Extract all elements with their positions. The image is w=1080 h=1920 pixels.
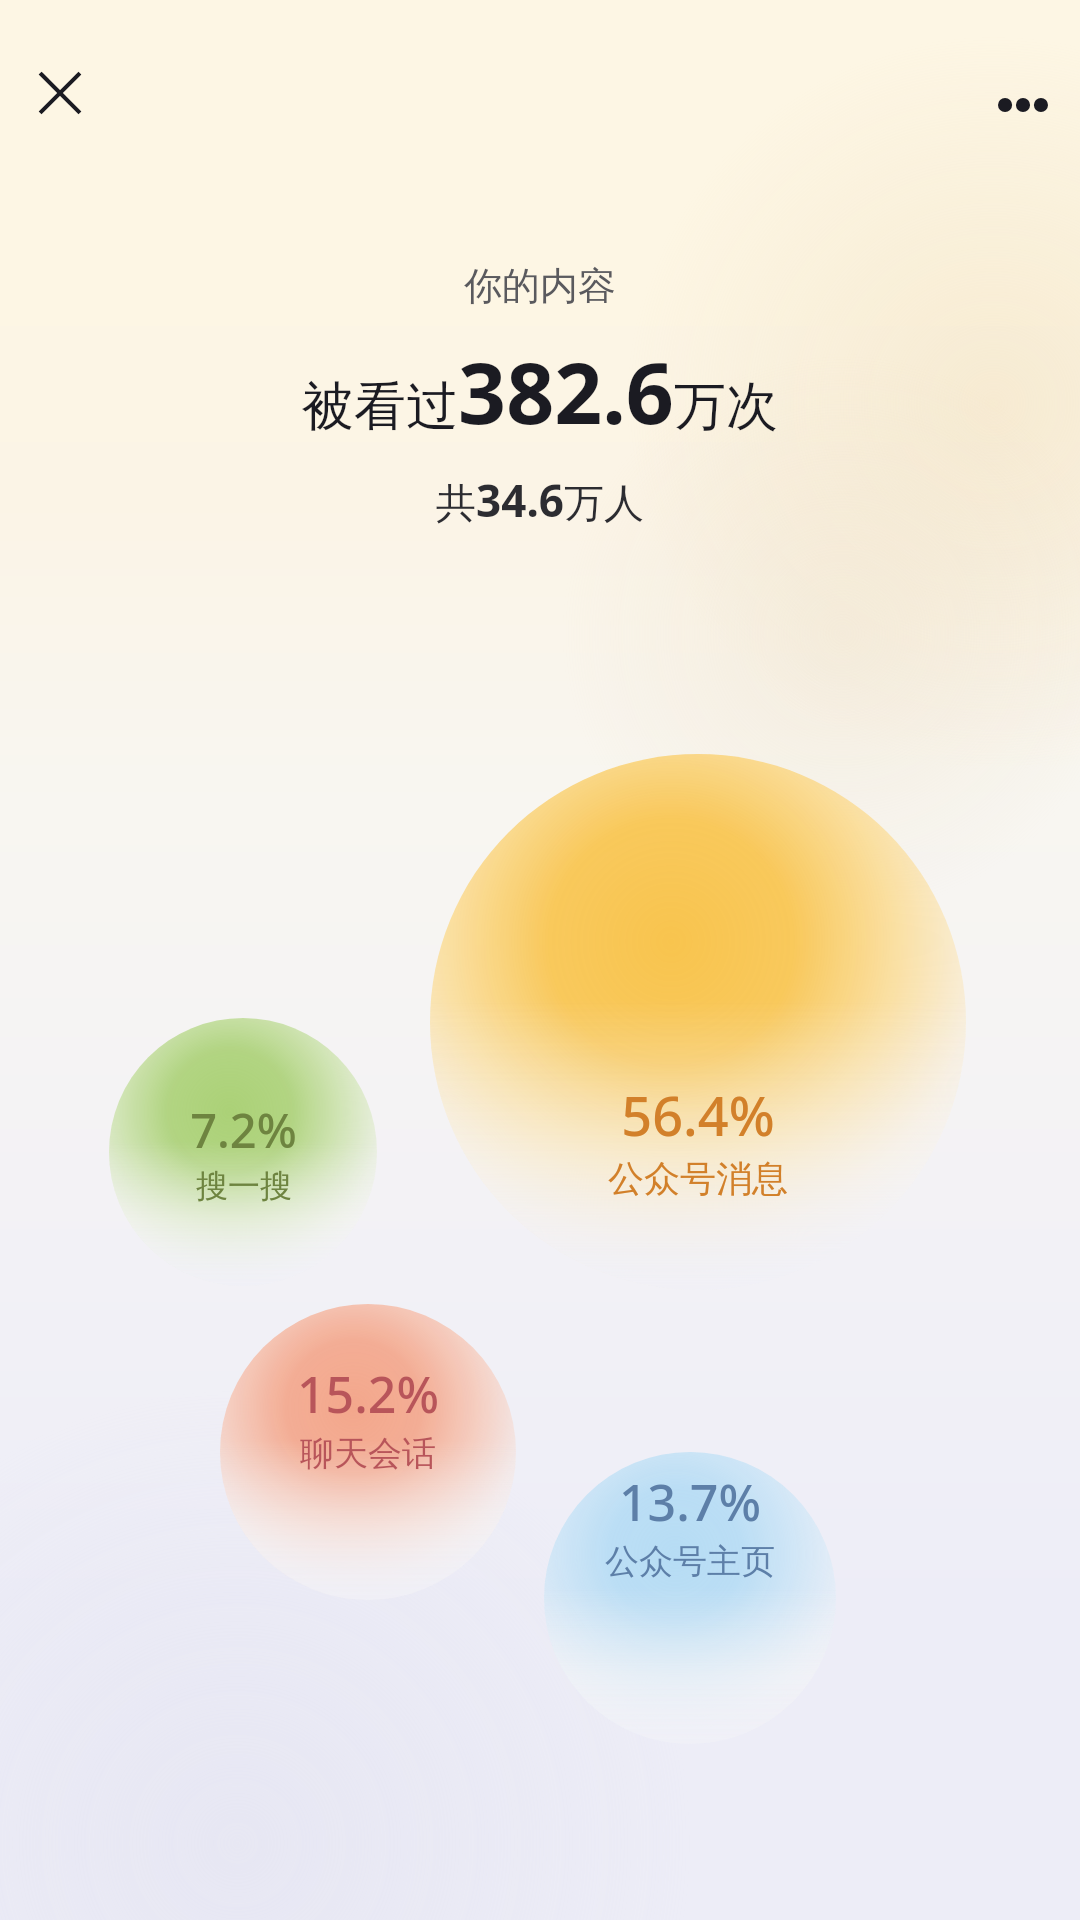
staticText: 搜一搜 xyxy=(196,1166,292,1206)
staticText: 15.2% xyxy=(297,1360,439,1428)
button[interactable]: More options xyxy=(985,67,1060,142)
staticText: 公众号主页 xyxy=(605,1540,775,1583)
button[interactable]: Close xyxy=(22,55,97,130)
staticText: 你的内容 xyxy=(464,262,616,310)
staticText: 共34.6万人 xyxy=(436,470,644,530)
button[interactable]: 13.7% xyxy=(500,1468,880,1593)
staticText: 被看过382.6万次 xyxy=(302,334,778,448)
staticText: 56.4% xyxy=(621,1078,775,1152)
staticText: 公众号消息 xyxy=(608,1156,788,1201)
button[interactable]: 15.2% xyxy=(188,1360,548,1485)
staticText: 7.2% xyxy=(190,1098,297,1162)
staticText: 13.7% xyxy=(619,1468,761,1536)
staticText: 聊天会话 xyxy=(300,1432,436,1475)
button[interactable]: 7.2% xyxy=(73,1098,413,1218)
button[interactable]: 56.4% xyxy=(468,1078,928,1208)
